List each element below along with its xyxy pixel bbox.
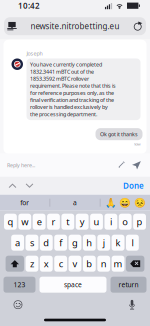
button[interactable]: s <box>26 235 38 251</box>
staticText: p <box>137 215 143 228</box>
staticText: Joseph <box>26 50 42 57</box>
button[interactable]: v <box>69 256 81 272</box>
button[interactable]: k <box>112 235 124 251</box>
button[interactable]: Dictate <box>121 299 143 311</box>
button[interactable]: l <box>126 235 139 251</box>
staticText: 10:42 <box>18 0 40 11</box>
staticText: Reply here... <box>7 162 35 169</box>
staticText: 🙏 <box>105 197 117 208</box>
staticText: f <box>59 236 62 249</box>
button[interactable]: y <box>76 214 89 230</box>
staticText: Done <box>123 180 144 191</box>
staticText: j <box>103 236 105 249</box>
button[interactable] <box>6 256 24 272</box>
staticText: t <box>66 215 69 228</box>
staticText: 123 <box>13 280 25 289</box>
button[interactable]: h <box>83 235 96 251</box>
button[interactable]: Emoji suggestions <box>100 195 150 211</box>
staticText: c <box>59 257 63 270</box>
button[interactable]: Page settings <box>2 18 22 35</box>
button[interactable]: Reload <box>128 18 148 35</box>
button[interactable]: Next field <box>21 177 38 195</box>
button[interactable]: z <box>26 256 38 272</box>
button[interactable]: t <box>61 214 74 230</box>
button[interactable]: x <box>40 256 53 272</box>
button[interactable]: Previous field <box>4 177 21 195</box>
staticText: n <box>101 257 107 270</box>
button[interactable]: i <box>104 214 117 230</box>
button[interactable]: u <box>90 214 103 230</box>
button[interactable]: q <box>4 214 17 230</box>
button[interactable]: e <box>33 214 45 230</box>
staticText: newsite.nitrobetting.eu <box>30 21 119 31</box>
button[interactable]: r <box>47 214 60 230</box>
staticText: q <box>7 215 13 228</box>
button[interactable]: c <box>54 256 67 272</box>
staticText: Ok got it thanks <box>100 131 138 138</box>
button[interactable]: o <box>119 214 132 230</box>
staticText: You have currently completed 1832.3441 m… <box>30 61 116 118</box>
button[interactable]: n <box>97 256 110 272</box>
button[interactable]: a <box>50 195 100 211</box>
button[interactable]: p <box>133 214 146 230</box>
staticText: v <box>72 257 77 270</box>
staticText: a <box>73 198 77 207</box>
button[interactable]: j <box>97 235 110 251</box>
staticText: k <box>115 236 120 249</box>
button[interactable]: Emoji keyboard <box>7 299 29 311</box>
staticText: d <box>43 236 49 249</box>
staticText: x <box>44 257 49 270</box>
staticText: 😄 <box>119 197 131 208</box>
staticText: e <box>37 215 42 228</box>
staticText: 😣 <box>134 197 146 208</box>
staticText: l <box>131 236 133 249</box>
button[interactable]: g <box>69 235 81 251</box>
staticText: r <box>51 215 55 228</box>
button[interactable]: 123 <box>3 277 35 293</box>
staticText: g <box>72 236 78 249</box>
staticText: w <box>21 215 28 228</box>
staticText: a <box>15 236 20 249</box>
staticText: y <box>80 215 85 228</box>
button[interactable]: w <box>18 214 31 230</box>
staticText: u <box>93 215 99 228</box>
staticText: for <box>20 198 29 207</box>
button[interactable]: Attach file <box>114 155 129 175</box>
staticText: m <box>113 257 122 270</box>
button[interactable]: f <box>54 235 67 251</box>
staticText: space <box>64 280 82 289</box>
staticText: s <box>30 236 34 249</box>
button[interactable]: space <box>39 277 106 293</box>
button[interactable]: return <box>110 277 146 293</box>
button[interactable]: b <box>83 256 96 272</box>
staticText: i <box>110 215 112 228</box>
staticText: h <box>86 236 92 249</box>
staticText: z <box>30 257 34 270</box>
button[interactable]: m <box>112 256 124 272</box>
button[interactable]: Done <box>117 177 150 195</box>
staticText: b <box>86 257 92 270</box>
button[interactable]: Send <box>129 155 144 175</box>
button[interactable] <box>126 256 144 272</box>
button[interactable]: for <box>0 195 50 211</box>
staticText: return <box>118 280 138 289</box>
button[interactable]: d <box>40 235 53 251</box>
button[interactable]: a <box>11 235 24 251</box>
staticText: o <box>122 215 128 228</box>
staticText: now <box>133 141 140 146</box>
